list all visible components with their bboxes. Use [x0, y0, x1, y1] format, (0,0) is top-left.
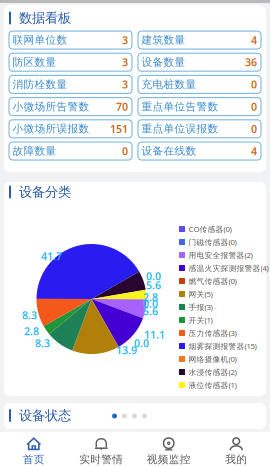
staticText: 设备分类 — [19, 184, 71, 200]
staticText: 70 — [116, 99, 128, 114]
staticText: 水浸传感器(2) — [188, 367, 236, 377]
staticText: 11.1 — [144, 327, 165, 342]
button[interactable]: 设备在线数 — [138, 142, 261, 160]
staticText: 用电安全报警器(2) — [188, 250, 252, 260]
staticText: 充电桩数量 — [141, 78, 196, 91]
staticText: 建筑数量 — [141, 33, 185, 46]
staticText: 8.3 — [22, 308, 37, 322]
staticText: 0.0 — [146, 269, 161, 283]
staticText: 重点单位告警数 — [141, 100, 218, 113]
staticText: 0 — [251, 122, 257, 136]
staticText: 防区数量 — [12, 56, 56, 69]
button[interactable]: 重点单位误报数 — [138, 120, 261, 138]
button[interactable]: 故障数量 — [9, 142, 132, 160]
staticText: 小微场所误报数 — [12, 122, 89, 135]
staticText: 41.7 — [41, 249, 62, 263]
button[interactable]: 防区数量 — [9, 53, 132, 71]
staticText: 设备状态 — [19, 407, 71, 424]
button[interactable]: 首页 — [0, 432, 67, 467]
button[interactable]: 小微场所误报数 — [9, 120, 132, 138]
staticText: 视频监控 — [147, 453, 191, 466]
staticText: 网络摄像机(0) — [188, 354, 236, 364]
staticText: 实时警情 — [79, 453, 123, 466]
button[interactable]: 联网单位数 — [9, 31, 132, 49]
staticText: 0.0 — [134, 336, 149, 350]
staticText: 设备数量 — [141, 56, 185, 69]
staticText: 首页 — [23, 453, 45, 466]
button[interactable]: 实时警情 — [67, 432, 135, 467]
staticText: 我的 — [225, 453, 247, 466]
button[interactable]: 我的 — [202, 432, 270, 467]
staticText: 设备在线数 — [141, 144, 196, 157]
button[interactable]: 小微场所告警数 — [9, 98, 132, 116]
staticText: 151 — [110, 122, 128, 136]
staticText: 8.3 — [35, 336, 50, 350]
staticText: 手报(3) — [188, 302, 212, 312]
staticText: 5.6 — [146, 278, 161, 292]
staticText: 压力传感器(3) — [188, 328, 236, 338]
button[interactable]: 重点单位告警数 — [138, 98, 261, 116]
staticText: 3 — [122, 77, 128, 91]
staticText: 4 — [251, 144, 257, 158]
staticText: 0.0 — [143, 296, 158, 311]
staticText: 数据看板 — [19, 10, 71, 26]
staticText: 4 — [251, 33, 257, 47]
staticText: 门磁传感器(0) — [188, 237, 236, 247]
staticText: 0 — [122, 144, 128, 158]
button[interactable]: 设备数量 — [138, 53, 261, 71]
staticText: 13.9 — [116, 343, 137, 357]
staticText: 3 — [122, 33, 128, 47]
staticText: 3 — [122, 55, 128, 69]
staticText: CO传感器(0) — [188, 224, 231, 234]
button[interactable]: 视频监控 — [135, 432, 202, 467]
button[interactable]: 建筑数量 — [138, 31, 261, 49]
staticText: 重点单位误报数 — [141, 122, 218, 135]
button[interactable]: 充电桩数量 — [138, 75, 261, 93]
staticText: 2.8 — [143, 290, 158, 304]
button[interactable]: 消防栓数量 — [9, 75, 132, 93]
staticText: 燃气传感器(0) — [188, 276, 236, 286]
staticText: 消防栓数量 — [12, 78, 67, 91]
staticText: 2.8 — [24, 324, 39, 338]
staticText: 网关(5) — [188, 289, 212, 299]
staticText: 感温火灾探测报警器(4) — [188, 263, 268, 273]
staticText: 液位传感器(1) — [188, 380, 236, 390]
staticText: 0 — [251, 77, 257, 91]
staticText: 开关(1) — [188, 315, 212, 325]
staticText: 联网单位数 — [12, 33, 67, 46]
staticText: 0 — [251, 99, 257, 114]
staticText: 故障数量 — [12, 144, 56, 157]
staticText: 烟雾探测报警器(15) — [188, 341, 256, 351]
staticText: 5.6 — [143, 304, 158, 318]
staticText: 36 — [245, 55, 257, 69]
staticText: 小微场所告警数 — [12, 100, 89, 113]
